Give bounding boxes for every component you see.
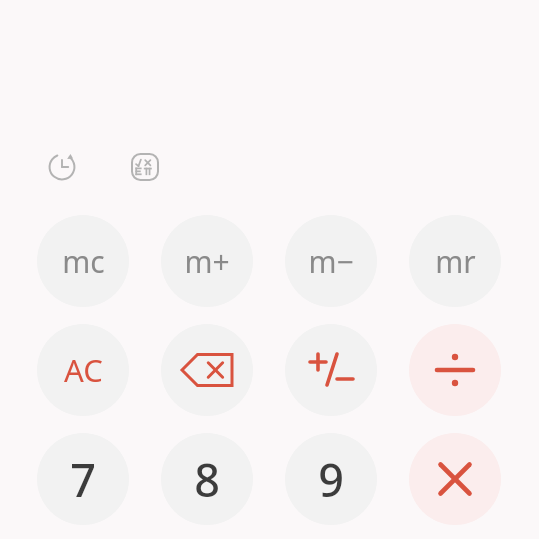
staticText: mc bbox=[62, 241, 105, 282]
button[interactable]: Multiply bbox=[409, 433, 501, 525]
button[interactable]: m+ bbox=[161, 215, 253, 307]
staticText: 8 bbox=[194, 449, 220, 510]
button[interactable]: 8 bbox=[161, 433, 253, 525]
button[interactable]: mc bbox=[37, 215, 129, 307]
button[interactable]: Scientific calculator bbox=[123, 145, 167, 189]
button[interactable]: History bbox=[40, 145, 84, 189]
staticText: mr bbox=[435, 241, 476, 282]
staticText: m− bbox=[308, 241, 354, 282]
button[interactable]: mr bbox=[409, 215, 501, 307]
button[interactable]: Backspace bbox=[161, 324, 253, 416]
staticText: AC bbox=[64, 349, 103, 391]
button[interactable]: Divide bbox=[409, 324, 501, 416]
button[interactable]: AC bbox=[37, 324, 129, 416]
staticText: 7 bbox=[70, 449, 96, 510]
staticText: 9 bbox=[318, 449, 344, 510]
button[interactable]: 7 bbox=[37, 433, 129, 525]
button[interactable]: Toggle sign bbox=[285, 324, 377, 416]
button[interactable]: 9 bbox=[285, 433, 377, 525]
staticText: m+ bbox=[184, 241, 230, 282]
button[interactable]: m− bbox=[285, 215, 377, 307]
